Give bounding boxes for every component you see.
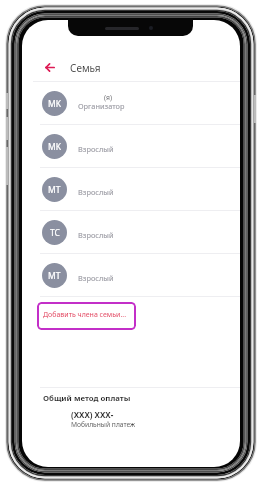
staticText: MK — [48, 98, 61, 110]
button[interactable]: MK — [22, 125, 240, 168]
button[interactable]: Добавить члена семьи... — [37, 302, 136, 330]
button[interactable]: Back — [40, 57, 60, 77]
staticText: (XXX) XXX- — [71, 409, 114, 420]
staticText: Взрослый — [78, 273, 114, 283]
staticText: MK — [48, 141, 61, 153]
staticText: Взрослый — [78, 187, 114, 197]
button[interactable]: MT — [22, 254, 240, 297]
staticText: Мобильный платеж — [71, 420, 136, 429]
button[interactable]: MK — [22, 82, 240, 125]
staticText: Взрослый — [78, 230, 114, 240]
staticText: Общий метод оплаты — [43, 393, 131, 404]
staticText: Организатор — [78, 101, 125, 111]
staticText: Взрослый — [78, 144, 114, 154]
staticText: Семья — [70, 61, 101, 75]
staticText: (я) — [104, 93, 112, 102]
staticText: TC — [50, 227, 60, 239]
staticText: MT — [48, 184, 61, 196]
staticText: Добавить члена семьи... — [43, 310, 127, 320]
button[interactable]: TC — [22, 211, 240, 254]
staticText: MT — [48, 270, 61, 282]
button[interactable]: MT — [22, 168, 240, 211]
